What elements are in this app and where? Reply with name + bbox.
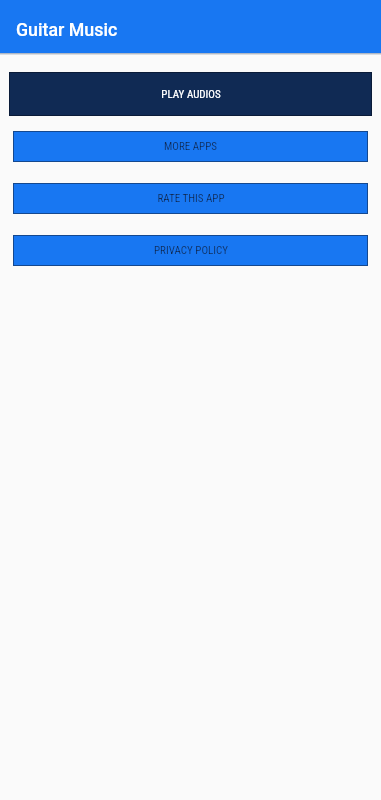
staticText: MORE APPS <box>164 140 217 153</box>
staticText: PLAY AUDIOS <box>161 88 221 101</box>
staticText: RATE THIS APP <box>157 192 225 205</box>
button[interactable]: PRIVACY POLICY <box>13 235 368 266</box>
staticText: Guitar Music <box>16 19 118 40</box>
button[interactable]: MORE APPS <box>13 131 368 162</box>
button[interactable]: PLAY AUDIOS <box>9 72 372 116</box>
button[interactable]: RATE THIS APP <box>13 183 368 214</box>
staticText: PRIVACY POLICY <box>154 244 228 257</box>
